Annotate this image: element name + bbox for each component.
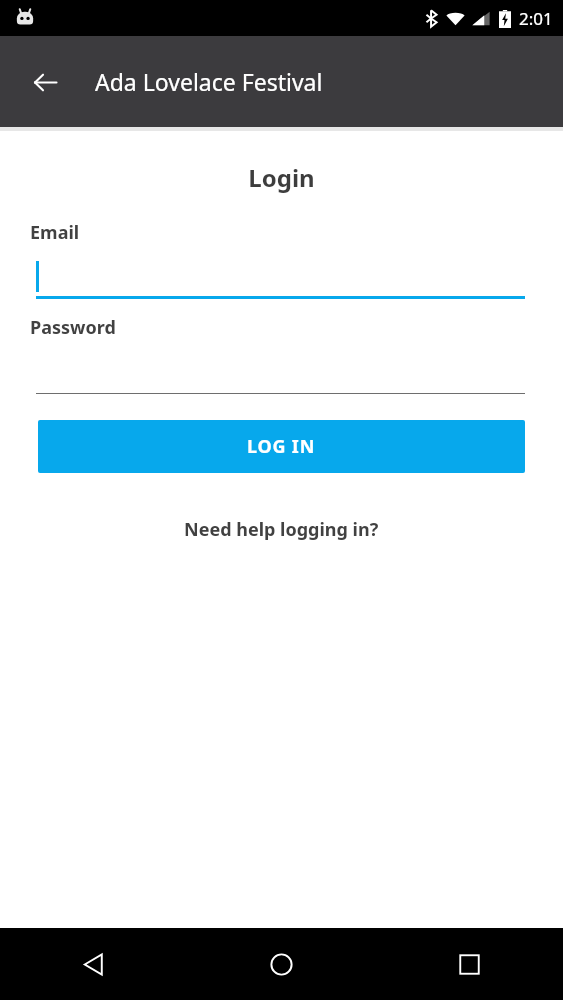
staticText: LOG IN: [247, 434, 316, 459]
staticText: Ada Lovelace Festival: [95, 66, 323, 97]
button[interactable]: Back: [0, 928, 187, 1000]
staticText: Need help logging in?: [184, 517, 379, 542]
button[interactable]: [36, 354, 525, 394]
staticText: Email: [30, 220, 80, 245]
button[interactable]: LOG IN: [38, 420, 525, 473]
button[interactable]: Home: [187, 928, 375, 1000]
staticText: Login: [0, 161, 563, 194]
button[interactable]: Need help logging in?: [172, 513, 391, 546]
staticText: 2:01: [519, 7, 553, 30]
staticText: Password: [30, 315, 116, 340]
button[interactable]: [36, 259, 525, 299]
button[interactable]: Back: [21, 58, 69, 106]
button[interactable]: Recent apps: [375, 928, 563, 1000]
